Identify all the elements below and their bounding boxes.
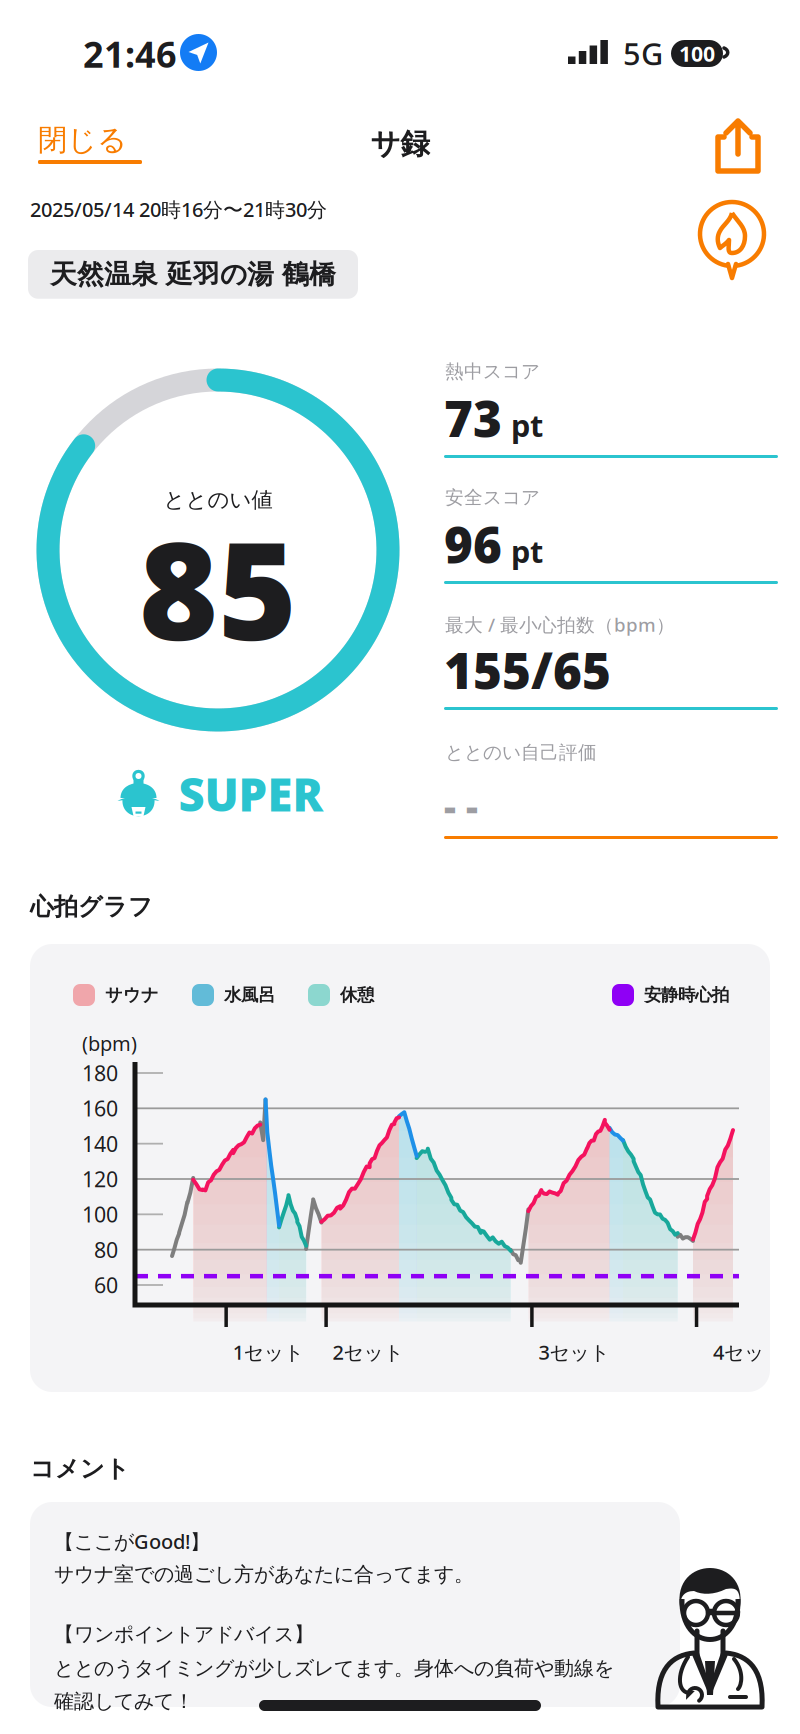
- staticText: 21:46: [83, 30, 177, 78]
- staticText: 160: [82, 1094, 118, 1122]
- staticText: ととのい値: [163, 487, 272, 513]
- staticText: 180: [82, 1059, 118, 1087]
- staticText: 2セット: [333, 1339, 404, 1365]
- staticText: 73: [444, 385, 502, 450]
- staticText: 心拍グラフ: [30, 892, 153, 921]
- staticText: 100: [82, 1200, 118, 1228]
- button[interactable]: Share: [692, 106, 784, 186]
- staticText: 熱中スコア: [445, 360, 540, 383]
- staticText: 【ここがGood!】: [54, 1528, 210, 1555]
- staticText: - -: [444, 781, 478, 831]
- button[interactable]: Heat level: [696, 198, 776, 282]
- staticText: 安静時心拍: [644, 984, 729, 1006]
- staticText: 確認してみて！: [54, 1689, 194, 1714]
- staticText: 80: [94, 1235, 118, 1264]
- staticText: 120: [82, 1165, 118, 1193]
- staticText: サウナ室での過ごし方があなたに合ってます。: [54, 1562, 474, 1587]
- staticText: 85: [139, 499, 297, 677]
- staticText: サウナ: [105, 984, 159, 1006]
- staticText: 1セット: [233, 1339, 304, 1365]
- staticText: 140: [82, 1129, 118, 1158]
- staticText: pt: [511, 531, 543, 571]
- staticText: 60: [94, 1271, 118, 1299]
- staticText: ととのうタイミングが少しズレてます。身体への負荷や動線を: [54, 1656, 614, 1681]
- staticText: 休憩: [340, 984, 374, 1006]
- staticText: (bpm): [82, 1030, 137, 1057]
- staticText: 【ワンポイントアドバイス】: [54, 1622, 314, 1647]
- staticText: 天然温泉 延羽の湯 鶴橋: [50, 258, 336, 291]
- staticText: サ録: [370, 126, 429, 162]
- staticText: 水風呂: [224, 984, 275, 1006]
- staticText: 5G: [623, 33, 663, 74]
- button[interactable]: 天然温泉 延羽の湯 鶴橋: [28, 250, 358, 299]
- staticText: 閉じる: [38, 122, 127, 158]
- button[interactable]: 閉じる: [24, 112, 156, 174]
- staticText: ととのい自己評価: [445, 741, 597, 764]
- staticText: 4セッ: [713, 1339, 764, 1365]
- staticText: 2025/05/14 20時16分〜21時30分: [30, 196, 327, 223]
- staticText: コメント: [30, 1454, 130, 1483]
- staticText: 安全スコア: [445, 486, 540, 509]
- staticText: 最大 / 最小心拍数（bpm）: [445, 612, 675, 637]
- staticText: 96: [444, 511, 502, 576]
- staticText: 3セット: [538, 1339, 609, 1365]
- staticText: 155/65: [444, 637, 611, 702]
- staticText: SUPER: [178, 764, 323, 824]
- staticText: 100: [679, 39, 715, 68]
- staticText: pt: [511, 405, 543, 445]
